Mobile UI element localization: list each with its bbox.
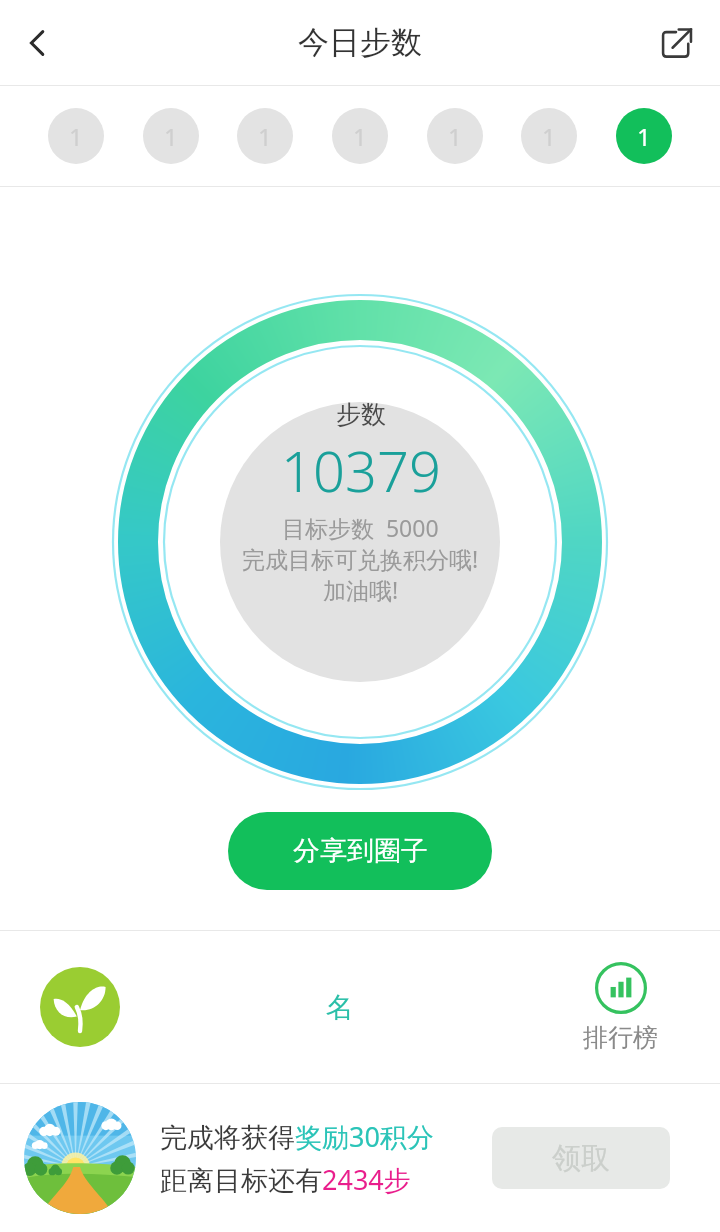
staticText: 1 <box>69 120 83 153</box>
staticText: 距离目标还有2434步 <box>160 1161 411 1198</box>
button[interactable]: 返回 <box>8 13 68 73</box>
staticText: 1 <box>353 120 367 153</box>
staticText: 名 <box>326 990 354 1025</box>
staticText: 分享到圈子 <box>293 834 428 868</box>
staticText: 10379 <box>281 432 441 508</box>
staticText: 1 <box>637 120 651 153</box>
staticText: 1 <box>448 120 462 153</box>
button[interactable]: 1 <box>143 108 199 164</box>
staticText: 加油哦! <box>323 574 399 605</box>
staticText: 1 <box>164 120 178 153</box>
staticText: 排行榜 <box>583 1022 658 1053</box>
button[interactable]: 分享 <box>646 13 706 73</box>
button[interactable]: 5000步任务 <box>24 1102 136 1214</box>
staticText: 领取 <box>552 1140 610 1177</box>
button[interactable]: 1 <box>332 108 388 164</box>
staticText: 1 <box>542 120 556 153</box>
button[interactable]: 分享到圈子 <box>228 812 492 890</box>
button[interactable]: 1 <box>427 108 483 164</box>
button[interactable]: 领取 <box>492 1127 670 1189</box>
button[interactable]: 排行榜 <box>520 931 720 1083</box>
staticText: 今日步数 <box>298 23 422 62</box>
button[interactable]: 1 <box>521 108 577 164</box>
button[interactable]: 名 <box>160 931 520 1083</box>
staticText: 完成将获得奖励30积分 <box>160 1118 434 1155</box>
staticText: 目标步数 5000 <box>282 512 439 543</box>
button[interactable]: 1 <box>48 108 104 164</box>
button[interactable]: 1 <box>616 108 672 164</box>
staticText: 步数 <box>336 399 386 430</box>
staticText: 完成目标可兑换积分哦! <box>242 543 479 574</box>
staticText: 1 <box>258 120 272 153</box>
button[interactable]: 1 <box>237 108 293 164</box>
button[interactable]: 能量 <box>0 931 160 1083</box>
